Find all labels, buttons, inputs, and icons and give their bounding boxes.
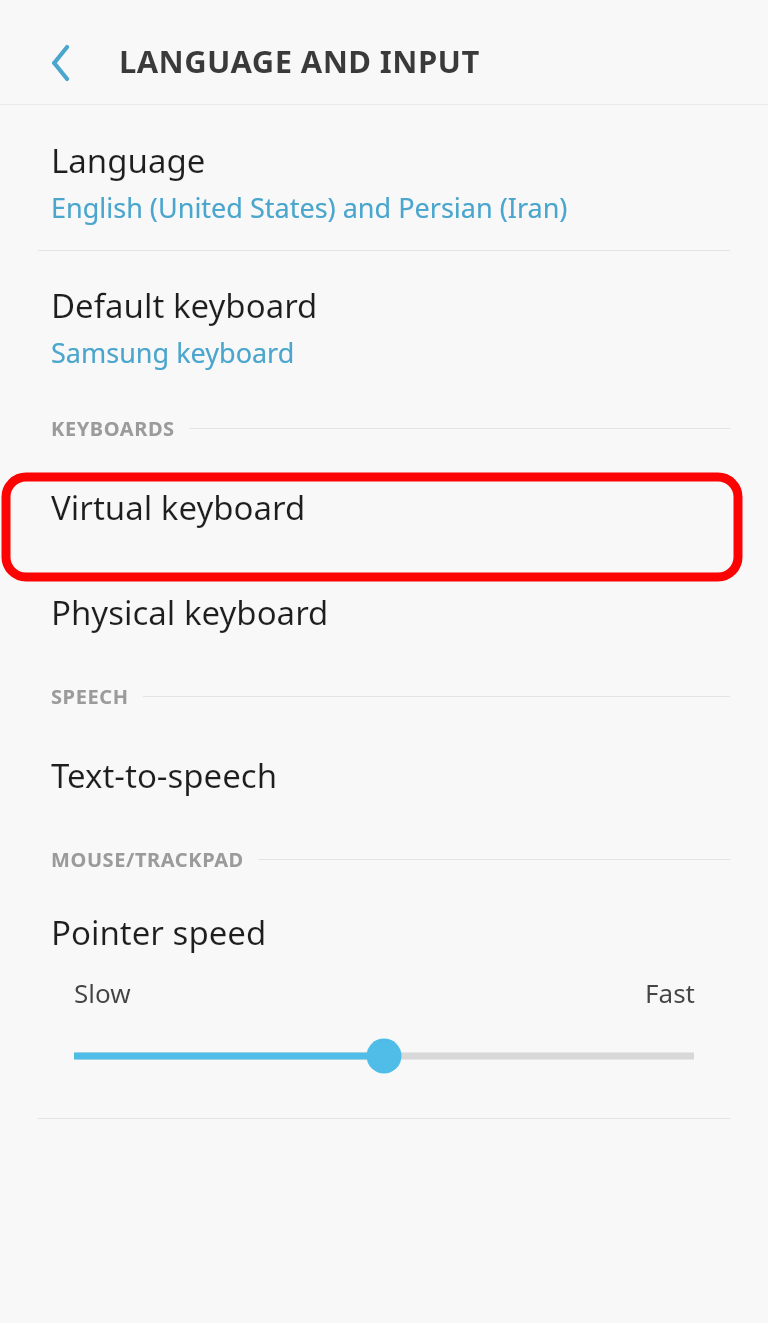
staticText: Default keyboard <box>51 283 318 328</box>
staticText: LANGUAGE AND INPUT <box>119 40 480 82</box>
staticText: English (United States) and Persian (Ira… <box>51 189 568 226</box>
button[interactable]: Pointer speed <box>0 888 768 1118</box>
button[interactable]: Text-to-speech <box>0 725 768 830</box>
staticText: Samsung keyboard <box>51 334 295 371</box>
staticText: Text-to-speech <box>51 753 278 798</box>
button[interactable]: Language <box>0 105 768 250</box>
staticText: Physical keyboard <box>51 590 329 635</box>
staticText: MOUSE/TRACKPAD <box>51 846 244 873</box>
button[interactable]: Physical keyboard <box>0 562 768 667</box>
staticText: SPEECH <box>51 683 129 710</box>
staticText: Pointer speed <box>51 910 267 955</box>
staticText: Language <box>51 138 206 183</box>
staticText: KEYBOARDS <box>51 415 175 442</box>
button[interactable]: Default keyboard <box>0 251 768 399</box>
staticText: Virtual keyboard <box>51 485 306 530</box>
button[interactable]: Virtual keyboard <box>0 457 768 562</box>
staticText: Slow <box>74 975 131 1010</box>
staticText: Fast <box>645 975 695 1010</box>
button[interactable]: Back <box>30 32 92 94</box>
